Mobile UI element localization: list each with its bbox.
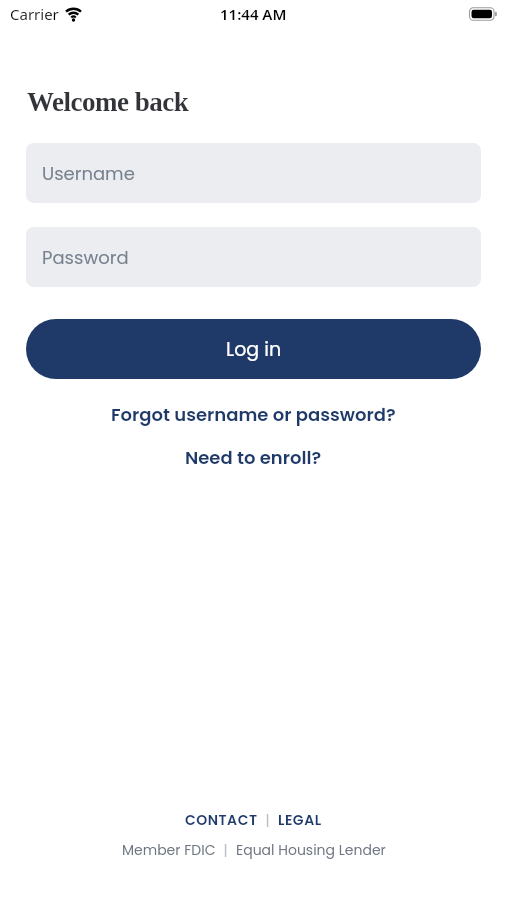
staticText: Password (42, 245, 129, 270)
button[interactable]: CONTACT (185, 810, 258, 830)
button[interactable]: LEGAL (278, 810, 322, 830)
staticText: | (258, 810, 278, 830)
staticText: Carrier (10, 4, 59, 24)
staticText: Need to enroll? (185, 445, 322, 470)
staticText: LEGAL (278, 810, 322, 830)
staticText: Forgot username or password? (111, 402, 396, 427)
staticText: | (216, 840, 236, 860)
staticText: Username (42, 161, 135, 186)
button[interactable]: Log in (26, 319, 481, 379)
button[interactable]: Need to enroll? (185, 445, 322, 470)
staticText: 11:44 AM (220, 4, 287, 24)
staticText: CONTACT (185, 810, 258, 830)
staticText: Welcome back (27, 87, 189, 117)
staticText: Equal Housing Lender (236, 840, 386, 860)
button[interactable]: Username (26, 143, 481, 203)
staticText: Member FDIC (122, 840, 216, 860)
staticText: Log in (226, 336, 282, 363)
button[interactable]: Password (26, 227, 481, 287)
button[interactable]: Forgot username or password? (111, 402, 396, 427)
